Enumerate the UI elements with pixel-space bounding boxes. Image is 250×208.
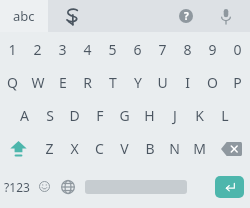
button[interactable]: G [112, 99, 137, 132]
button[interactable]: A [12, 99, 37, 132]
button[interactable]: N [162, 132, 187, 165]
button[interactable]: Q [0, 66, 25, 99]
button[interactable]: L [212, 99, 237, 132]
staticText: R [83, 73, 92, 92]
staticText: W [31, 73, 45, 92]
button[interactable]: W [25, 66, 50, 99]
staticText: 3 [58, 40, 67, 59]
staticText: J [173, 106, 177, 125]
button[interactable]: D [62, 99, 87, 132]
button[interactable]: K [187, 99, 212, 132]
button[interactable]: Shift [0, 132, 37, 165]
staticText: G [119, 106, 130, 125]
staticText: V [120, 139, 129, 158]
button[interactable]: U [150, 66, 175, 99]
staticText: E [59, 73, 67, 92]
staticText: U [157, 73, 168, 92]
button[interactable]: Enter [209, 165, 250, 208]
staticText: 5 [108, 40, 117, 59]
button[interactable]: 3 [50, 32, 75, 66]
button[interactable]: E [50, 66, 75, 99]
button[interactable]: 7 [150, 32, 175, 66]
button[interactable]: B [137, 132, 162, 165]
button[interactable]: abc [0, 0, 48, 32]
staticText: ? [184, 9, 189, 23]
staticText: N [169, 139, 180, 158]
button[interactable]: Z [37, 132, 62, 165]
staticText: T [109, 73, 117, 92]
button[interactable]: I [175, 66, 200, 99]
staticText: B [145, 139, 155, 158]
button[interactable]: 0 [225, 32, 250, 66]
button[interactable]: Handwriting input [56, 0, 88, 32]
button[interactable]: T [100, 66, 125, 99]
staticText: 8 [183, 40, 192, 59]
button[interactable]: Backspace [212, 132, 250, 165]
staticText: O [207, 73, 218, 92]
button[interactable]: P [225, 66, 250, 99]
staticText: L [221, 106, 229, 125]
staticText: X [70, 139, 79, 158]
staticText: S [46, 106, 54, 125]
button[interactable]: F [87, 99, 112, 132]
staticText: K [195, 106, 204, 125]
staticText: F [96, 106, 104, 125]
button[interactable]: S [37, 99, 62, 132]
staticText: 9 [208, 40, 217, 59]
staticText: Y [134, 73, 142, 92]
staticText: M [193, 139, 206, 158]
staticText: I [185, 73, 190, 92]
button[interactable]: Emoji [33, 165, 55, 208]
button[interactable]: Change language [55, 165, 81, 208]
button[interactable]: Help [170, 0, 202, 32]
staticText: C [95, 139, 104, 158]
button[interactable]: C [87, 132, 112, 165]
staticText: ?123 [4, 179, 30, 195]
button[interactable]: H [137, 99, 162, 132]
button[interactable]: 9 [200, 32, 225, 66]
staticText: 1 [8, 40, 17, 59]
staticText: D [69, 106, 80, 125]
button[interactable]: V [112, 132, 137, 165]
button[interactable]: 5 [100, 32, 125, 66]
staticText: 0 [233, 40, 242, 59]
button[interactable]: X [62, 132, 87, 165]
staticText: 6 [133, 40, 142, 59]
staticText: P [233, 73, 242, 92]
button[interactable]: J [162, 99, 187, 132]
button[interactable]: 6 [125, 32, 150, 66]
staticText: 7 [158, 40, 167, 59]
button[interactable]: ?123 [0, 165, 33, 208]
button[interactable]: O [200, 66, 225, 99]
staticText: A [20, 106, 29, 125]
button[interactable]: 2 [25, 32, 50, 66]
staticText: Q [7, 73, 18, 92]
button[interactable]: Y [125, 66, 150, 99]
staticText: Z [45, 139, 54, 158]
staticText: 2 [33, 40, 42, 59]
staticText: 4 [83, 40, 92, 59]
button[interactable]: Voice input [210, 0, 242, 32]
button[interactable]: M [187, 132, 212, 165]
staticText: abc [13, 7, 35, 25]
staticText: H [144, 106, 155, 125]
button[interactable]: 1 [0, 32, 25, 66]
button[interactable]: 4 [75, 32, 100, 66]
button[interactable]: R [75, 66, 100, 99]
button[interactable]: 8 [175, 32, 200, 66]
